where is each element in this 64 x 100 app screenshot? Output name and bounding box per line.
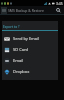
staticText: 3:45: [56, 1, 63, 6]
button[interactable]: Search: [54, 6, 62, 14]
staticText: SD Card: [13, 47, 28, 52]
button[interactable]: Dropbox: [2, 66, 58, 77]
staticText: Export to ?: [3, 24, 20, 28]
button[interactable]: Send by Email: [2, 33, 58, 44]
staticText: Email: [13, 58, 24, 63]
button[interactable]: Email: [2, 55, 58, 66]
staticText: Send by Email: [13, 36, 40, 41]
staticText: Dropbox: [13, 69, 30, 74]
button[interactable]: SD Card: [2, 44, 58, 55]
staticText: SMS Backup & Restore: [8, 8, 54, 13]
